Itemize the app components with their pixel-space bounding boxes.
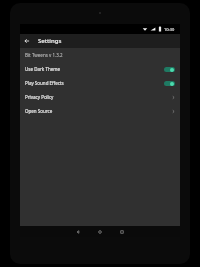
button[interactable]: Back bbox=[67, 226, 89, 237]
button[interactable]: Use Dark Theme bbox=[20, 62, 180, 76]
staticText: Open Source bbox=[25, 108, 172, 114]
staticText: Settings bbox=[38, 37, 62, 45]
button[interactable]: Privacy Policy bbox=[20, 90, 180, 104]
button[interactable]: Back bbox=[20, 34, 34, 48]
button[interactable]: Bit Tweens v 1.3.2 bbox=[20, 48, 180, 62]
button[interactable]: Open Source bbox=[20, 104, 180, 118]
staticText: Play Sound Effects bbox=[25, 80, 164, 86]
staticText: Use Dark Theme bbox=[25, 66, 164, 72]
staticText: Privacy Policy bbox=[25, 94, 172, 100]
button[interactable]: Home bbox=[89, 226, 111, 237]
button[interactable]: Play Sound Effects bbox=[20, 76, 180, 90]
staticText: 10:30 bbox=[164, 27, 175, 32]
staticText: Bit Tweens v 1.3.2 bbox=[25, 52, 63, 58]
button[interactable]: Recents bbox=[111, 226, 133, 237]
